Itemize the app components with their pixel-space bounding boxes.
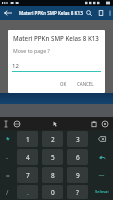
button[interactable]: - [2, 149, 13, 165]
button[interactable] [92, 131, 111, 147]
button[interactable]: Settings [99, 118, 110, 129]
staticText: 6 [76, 153, 80, 162]
button[interactable] [92, 149, 111, 165]
staticText: 2 [51, 135, 55, 144]
staticText: 9 [76, 171, 80, 180]
button[interactable]: * [2, 131, 13, 147]
staticText: . [27, 188, 29, 197]
button[interactable]: Cursor [49, 118, 60, 129]
staticText: 7 [26, 171, 30, 180]
button[interactable]: 5 [42, 149, 63, 165]
button[interactable]: More options [107, 7, 113, 19]
staticText: 3 [76, 135, 80, 144]
button[interactable]: 0 [42, 185, 63, 199]
button[interactable]: CANCEL [74, 80, 97, 88]
staticText: 4 [26, 153, 30, 162]
staticText: / [6, 188, 9, 197]
button[interactable]: Text editing [0, 118, 11, 129]
button[interactable]: 6 [67, 149, 88, 165]
button[interactable]: Bookmark [95, 7, 107, 19]
button[interactable]: Clipboard [88, 118, 99, 129]
staticText: Materi PPKn SMP Kelas 8 K13 [19, 10, 83, 16]
button[interactable] [92, 167, 111, 183]
staticText: 1 [26, 135, 30, 144]
staticText: CANCEL [77, 81, 94, 87]
button[interactable]: = [2, 167, 13, 183]
button[interactable]: 9 [67, 167, 88, 183]
button[interactable]: 2 [42, 131, 63, 147]
staticText: Materi PPKn SMP Kelas 8 K13 [13, 34, 99, 42]
button[interactable]: . [17, 185, 38, 199]
staticText: * [6, 135, 10, 144]
staticText: = [6, 171, 10, 180]
button[interactable]: Emoji [11, 118, 22, 129]
staticText: ? [76, 188, 79, 197]
staticText: 12 [12, 62, 19, 70]
button[interactable]: ? [67, 185, 88, 199]
button[interactable]: OK [57, 80, 70, 88]
staticText: 8 [51, 171, 55, 180]
button[interactable]: 8 [42, 167, 63, 183]
button[interactable]: Search [83, 7, 95, 19]
staticText: - [6, 153, 9, 162]
staticText: OK [60, 81, 67, 87]
staticText: Move to page ? [13, 47, 50, 54]
button[interactable]: / [2, 185, 13, 199]
button[interactable]: 3 [67, 131, 88, 147]
staticText: 5 [51, 153, 55, 162]
button[interactable]: Selesai [92, 185, 111, 199]
button[interactable]: Back [0, 6, 15, 20]
staticText: 0 [51, 188, 55, 197]
staticText: Selesai [95, 189, 109, 195]
button[interactable]: 4 [17, 149, 38, 165]
button[interactable]: 7 [17, 167, 38, 183]
button[interactable]: 1 [17, 131, 38, 147]
